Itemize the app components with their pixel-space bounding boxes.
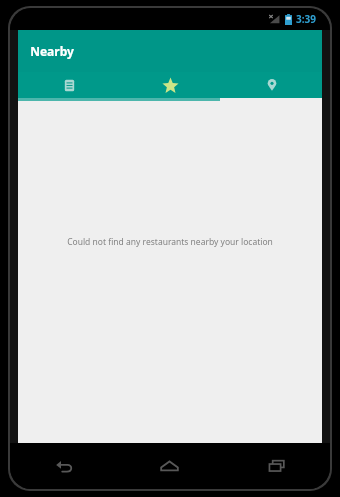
- staticText: Nearby: [30, 43, 74, 59]
- button[interactable]: Recent apps: [223, 443, 330, 489]
- button[interactable]: Favorites: [120, 72, 221, 98]
- staticText: Could not find any restaurants nearby yo…: [67, 236, 273, 248]
- button[interactable]: List: [18, 72, 120, 98]
- staticText: 3:39: [296, 12, 316, 26]
- button[interactable]: Back: [10, 443, 116, 489]
- button[interactable]: Home: [116, 443, 223, 489]
- button[interactable]: Map: [221, 72, 322, 98]
